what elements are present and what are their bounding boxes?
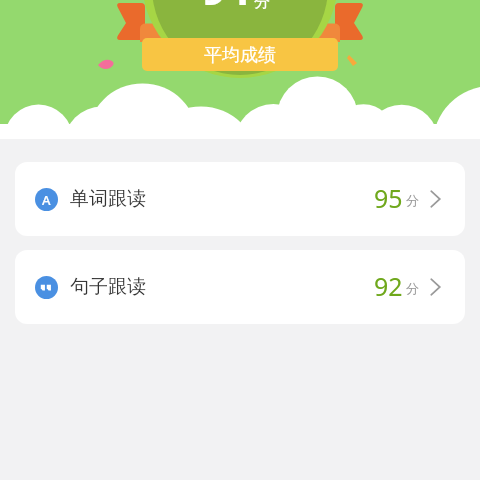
button[interactable]: A (15, 162, 465, 236)
staticText: 92 (374, 269, 403, 303)
staticText: 分 (406, 192, 419, 208)
staticText: 平均成绩 (204, 44, 276, 67)
staticText: 94 (202, 0, 251, 17)
staticText: 句子跟读 (70, 275, 146, 299)
staticText: 分 (406, 280, 419, 296)
staticText: 分 (254, 0, 270, 12)
staticText: 单词跟读 (70, 187, 146, 211)
staticText: 95 (374, 181, 403, 215)
button[interactable]: 句子跟读 (15, 250, 465, 324)
staticText: A (42, 191, 51, 209)
